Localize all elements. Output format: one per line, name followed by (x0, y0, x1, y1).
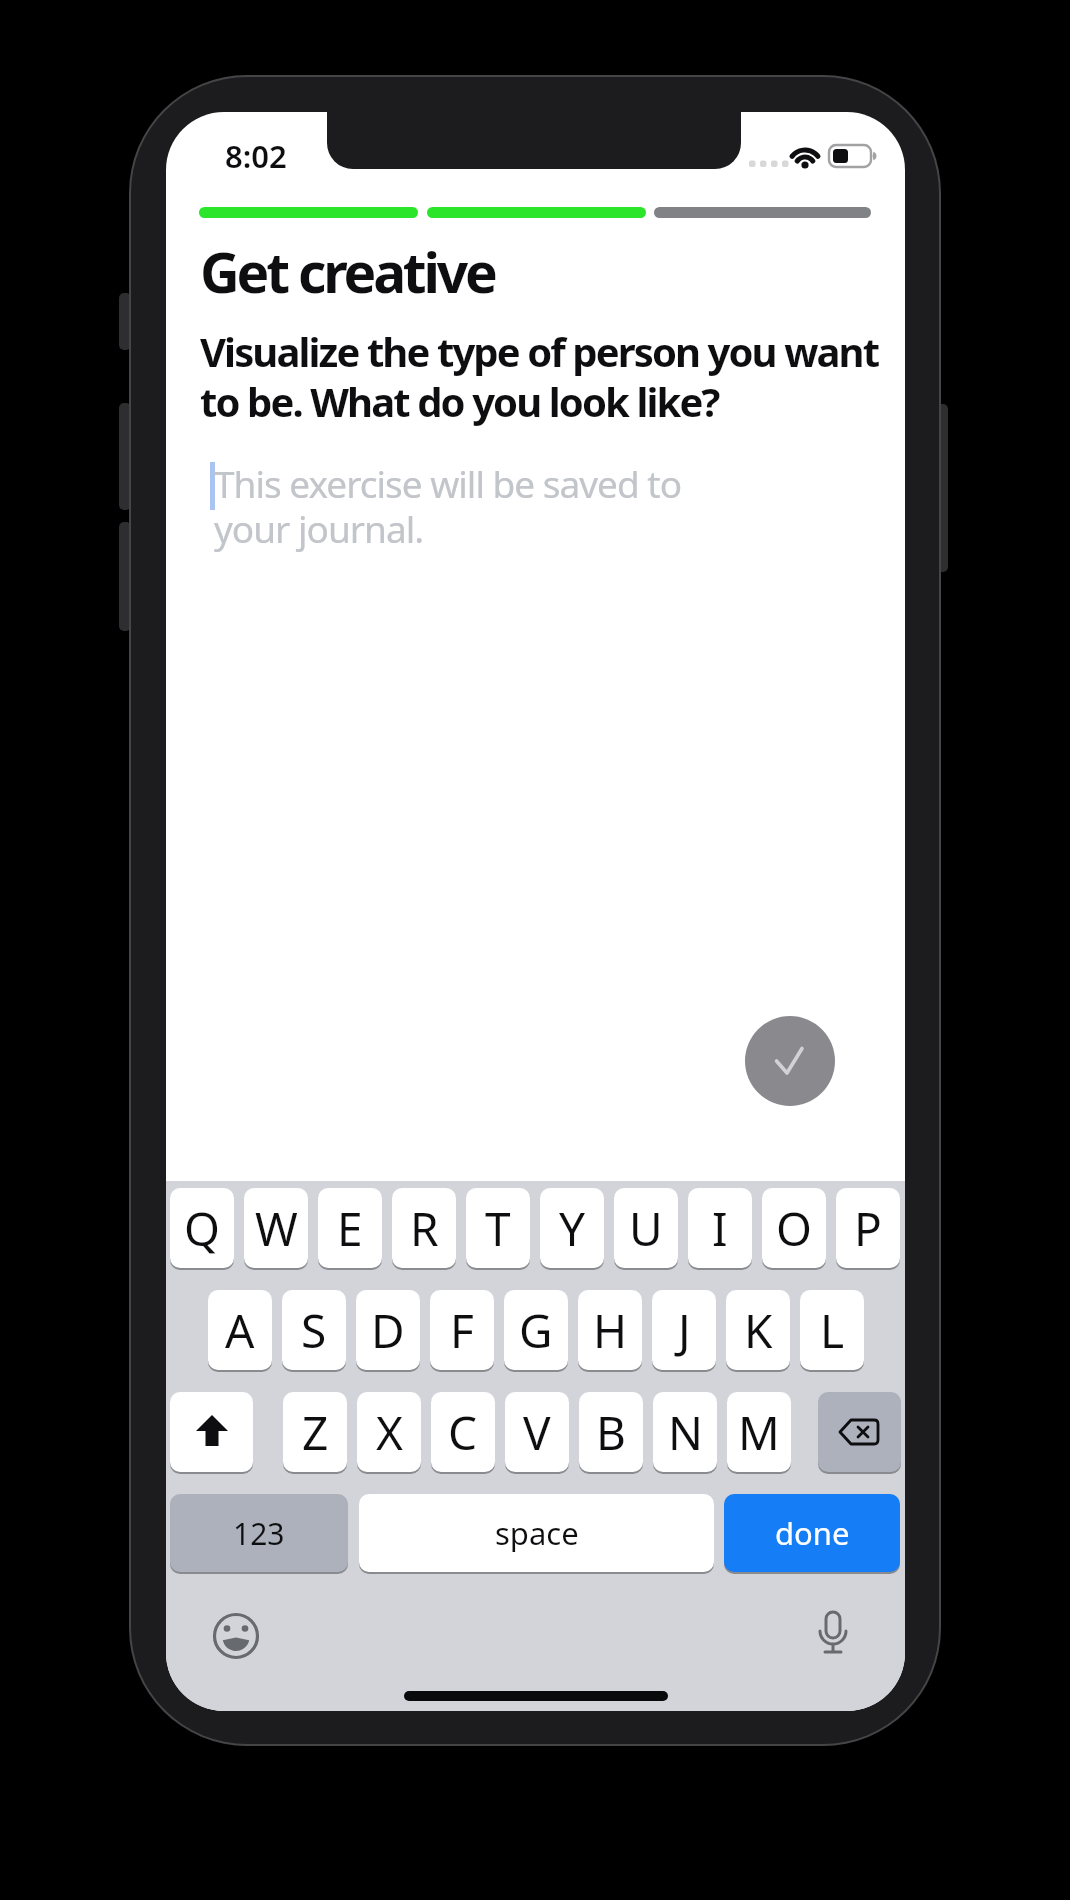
staticText: H (593, 1299, 628, 1362)
staticText: J (678, 1299, 691, 1362)
button[interactable]: O (762, 1188, 826, 1268)
button[interactable]: D (356, 1290, 420, 1370)
staticText: D (371, 1299, 405, 1362)
button[interactable]: V (505, 1392, 569, 1472)
staticText: N (668, 1401, 703, 1464)
staticText: W (255, 1197, 298, 1260)
staticText: G (519, 1299, 553, 1362)
staticText: F (450, 1299, 474, 1362)
button[interactable]: K (726, 1290, 790, 1370)
button[interactable] (818, 1392, 901, 1472)
button[interactable]: A (208, 1290, 272, 1370)
button[interactable] (170, 1392, 253, 1472)
button[interactable]: E (318, 1188, 382, 1268)
button[interactable]: T (466, 1188, 530, 1268)
staticText: Y (559, 1197, 586, 1260)
button[interactable]: I (688, 1188, 752, 1268)
button[interactable]: S (282, 1290, 346, 1370)
button[interactable]: 123 (170, 1494, 348, 1572)
staticText: K (744, 1299, 773, 1362)
button[interactable]: U (614, 1188, 678, 1268)
staticText: X (376, 1401, 403, 1464)
staticText: R (410, 1197, 439, 1260)
button[interactable]: P (836, 1188, 900, 1268)
button[interactable]: Q (170, 1188, 234, 1268)
button[interactable]: M (727, 1392, 791, 1472)
staticText: done (775, 1512, 850, 1554)
staticText: C (448, 1401, 478, 1464)
staticText: This exercise will be saved to your jour… (214, 458, 682, 554)
staticText: space (495, 1512, 579, 1554)
button[interactable]: F (430, 1290, 494, 1370)
button[interactable]: Y (540, 1188, 604, 1268)
staticText: Q (184, 1197, 220, 1260)
staticText: I (712, 1197, 728, 1260)
staticText: S (301, 1299, 327, 1362)
button[interactable] (745, 1016, 835, 1106)
staticText: O (776, 1197, 812, 1260)
button[interactable] (807, 1608, 859, 1660)
staticText: L (820, 1299, 845, 1362)
staticText: V (523, 1401, 551, 1464)
button[interactable]: space (359, 1494, 714, 1572)
button[interactable]: X (357, 1392, 421, 1472)
button[interactable]: Z (283, 1392, 347, 1472)
button[interactable]: W (244, 1188, 308, 1268)
button[interactable]: done (724, 1494, 900, 1572)
staticText: Get creative (200, 234, 495, 309)
staticText: Z (302, 1401, 329, 1464)
staticText: B (596, 1401, 626, 1464)
staticText: Visualize the type of person you want to… (200, 324, 900, 429)
button[interactable]: G (504, 1290, 568, 1370)
staticText: 8:02 (225, 135, 287, 177)
staticText: M (738, 1401, 780, 1464)
staticText: T (485, 1197, 511, 1260)
button[interactable]: B (579, 1392, 643, 1472)
button[interactable]: L (800, 1290, 864, 1370)
button[interactable]: H (578, 1290, 642, 1370)
button[interactable]: R (392, 1188, 456, 1268)
button[interactable]: J (652, 1290, 716, 1370)
button[interactable]: C (431, 1392, 495, 1472)
staticText: A (225, 1299, 255, 1362)
staticText: U (629, 1197, 663, 1260)
button[interactable] (210, 1610, 262, 1662)
button[interactable]: N (653, 1392, 717, 1472)
staticText: P (854, 1197, 882, 1260)
staticText: 123 (233, 1513, 285, 1554)
staticText: E (337, 1197, 363, 1260)
